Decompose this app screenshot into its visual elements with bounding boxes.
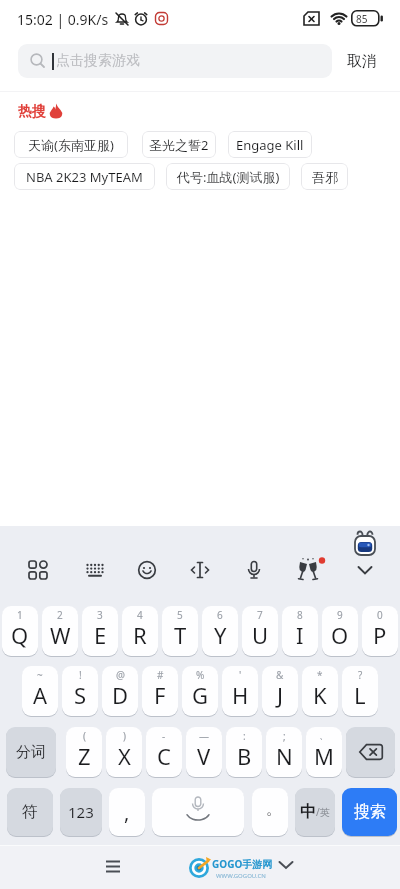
button[interactable]: , bbox=[109, 788, 145, 836]
button[interactable] bbox=[244, 560, 264, 580]
staticText: ( bbox=[83, 729, 86, 743]
staticText: : bbox=[243, 729, 246, 743]
staticText: — bbox=[199, 729, 209, 743]
button[interactable] bbox=[190, 560, 210, 580]
button[interactable]: @ bbox=[102, 666, 138, 716]
staticText: ; bbox=[283, 729, 286, 743]
button[interactable] bbox=[276, 856, 296, 874]
staticText: N bbox=[276, 741, 293, 771]
staticText: V bbox=[197, 741, 211, 771]
button[interactable]: ) bbox=[106, 727, 142, 777]
button[interactable]: NBA 2K23 MyTEAM bbox=[14, 163, 155, 190]
button[interactable]: 取消 bbox=[340, 44, 384, 78]
staticText: J bbox=[277, 680, 284, 710]
staticText: GOGO手游网 bbox=[212, 857, 273, 871]
staticText: WWW.GOGOU.CN bbox=[216, 872, 266, 880]
staticText: Engage Kill bbox=[236, 136, 304, 154]
button[interactable]: ; bbox=[266, 727, 302, 777]
staticText: Z bbox=[78, 741, 91, 771]
button[interactable]: 7 bbox=[242, 606, 278, 656]
button[interactable]: % bbox=[182, 666, 218, 716]
button[interactable]: - bbox=[146, 727, 182, 777]
staticText: U bbox=[252, 620, 269, 650]
staticText: S bbox=[74, 680, 87, 710]
button[interactable]: 符 bbox=[7, 788, 53, 836]
staticText: H bbox=[232, 680, 249, 710]
staticText: 7 bbox=[257, 608, 263, 622]
staticText: 热搜 bbox=[18, 103, 46, 121]
button[interactable]: 0 bbox=[362, 606, 398, 656]
staticText: 符 bbox=[22, 802, 38, 822]
button[interactable] bbox=[296, 557, 326, 583]
button[interactable]: 9 bbox=[322, 606, 358, 656]
button[interactable] bbox=[355, 560, 375, 580]
staticText: ~ bbox=[37, 668, 43, 682]
button[interactable] bbox=[137, 560, 157, 580]
button[interactable]: ? bbox=[342, 666, 378, 716]
button[interactable]: Engage Kill bbox=[228, 131, 312, 158]
button[interactable] bbox=[354, 530, 376, 556]
button[interactable]: 中 bbox=[295, 788, 335, 836]
button[interactable]: 吾邪 bbox=[301, 163, 348, 190]
staticText: 6 bbox=[217, 608, 223, 622]
staticText: 1 bbox=[17, 608, 23, 622]
button[interactable]: — bbox=[186, 727, 222, 777]
button[interactable]: & bbox=[262, 666, 298, 716]
button[interactable]: 123 bbox=[60, 788, 102, 836]
staticText: ) bbox=[123, 729, 126, 743]
staticText: M bbox=[314, 741, 334, 771]
staticText: 8 bbox=[297, 608, 303, 622]
staticText: , bbox=[124, 799, 130, 826]
staticText: NBA 2K23 MyTEAM bbox=[26, 168, 143, 186]
button[interactable]: 代号:血战(测试服) bbox=[166, 163, 290, 190]
button[interactable]: 4 bbox=[122, 606, 158, 656]
button[interactable] bbox=[346, 727, 395, 777]
button[interactable]: 圣光之誓2 bbox=[142, 131, 216, 158]
staticText: 123 bbox=[68, 802, 94, 822]
staticText: 代号:血战(测试服) bbox=[177, 168, 280, 186]
staticText: K bbox=[313, 680, 327, 710]
staticText: Y bbox=[214, 620, 227, 650]
staticText: # bbox=[157, 668, 164, 682]
button[interactable]: 2 bbox=[42, 606, 78, 656]
button[interactable]: # bbox=[142, 666, 178, 716]
button[interactable]: : bbox=[226, 727, 262, 777]
button[interactable]: 6 bbox=[202, 606, 238, 656]
staticText: F bbox=[154, 680, 166, 710]
button[interactable]: ' bbox=[222, 666, 258, 716]
staticText: & bbox=[276, 668, 284, 682]
button[interactable]: 。 bbox=[252, 788, 288, 836]
button[interactable]: GOGO手游网 bbox=[185, 850, 269, 884]
button[interactable] bbox=[152, 788, 244, 836]
staticText: 、 bbox=[319, 729, 329, 742]
staticText: C bbox=[157, 741, 171, 771]
staticText: B bbox=[237, 741, 252, 771]
staticText: ! bbox=[79, 668, 82, 682]
button[interactable]: 、 bbox=[306, 727, 342, 777]
staticText: 5 bbox=[177, 608, 183, 622]
staticText: A bbox=[33, 680, 48, 710]
staticText: 3 bbox=[97, 608, 103, 622]
button[interactable]: 分词 bbox=[6, 727, 56, 777]
button[interactable]: 点击搜索游戏 bbox=[18, 44, 332, 78]
button[interactable]: 8 bbox=[282, 606, 318, 656]
button[interactable] bbox=[28, 560, 48, 580]
button[interactable]: 3 bbox=[82, 606, 118, 656]
staticText: T bbox=[174, 620, 187, 650]
button[interactable]: * bbox=[302, 666, 338, 716]
button[interactable] bbox=[103, 857, 123, 877]
button[interactable]: 搜索 bbox=[342, 788, 397, 836]
button[interactable]: ( bbox=[66, 727, 102, 777]
staticText: E bbox=[94, 620, 107, 650]
button[interactable]: 天谕(东南亚服) bbox=[14, 131, 128, 158]
staticText: 天谕(东南亚服) bbox=[28, 136, 114, 154]
button[interactable]: 1 bbox=[2, 606, 38, 656]
staticText: /英 bbox=[316, 805, 330, 819]
button[interactable]: 5 bbox=[162, 606, 198, 656]
staticText: 0 bbox=[377, 608, 383, 622]
button[interactable] bbox=[85, 560, 105, 580]
button[interactable]: ~ bbox=[22, 666, 58, 716]
staticText: I bbox=[296, 620, 304, 650]
staticText: W bbox=[50, 620, 71, 650]
button[interactable]: ! bbox=[62, 666, 98, 716]
